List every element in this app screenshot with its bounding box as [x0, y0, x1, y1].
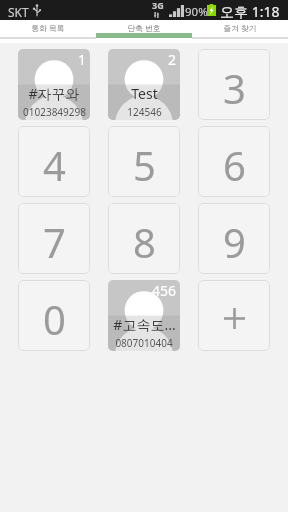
staticText: 01023849298: [23, 105, 86, 119]
button[interactable]: 단축 번호: [96, 20, 192, 43]
button[interactable]: [198, 280, 270, 351]
staticText: 1: [78, 50, 87, 69]
staticText: 90%: [185, 4, 208, 20]
button[interactable]: 8: [108, 203, 180, 274]
staticText: 5: [133, 138, 156, 192]
button[interactable]: 즐겨 찾기: [192, 20, 288, 43]
staticText: 4: [43, 138, 66, 192]
staticText: SKT: [8, 4, 29, 20]
staticText: 3G: [152, 0, 164, 11]
button[interactable]: 4: [18, 126, 90, 197]
staticText: 0: [43, 292, 66, 346]
button[interactable]: 456: [108, 280, 180, 351]
button[interactable]: 3: [198, 49, 270, 120]
button[interactable]: 5: [108, 126, 180, 197]
staticText: #자꾸와: [28, 84, 80, 103]
button[interactable]: 9: [198, 203, 270, 274]
staticText: 오후 1:18: [220, 2, 280, 21]
staticText: 7: [43, 215, 66, 269]
button[interactable]: 통화 목록: [0, 20, 96, 43]
button[interactable]: 6: [198, 126, 270, 197]
staticText: 2: [168, 50, 177, 69]
staticText: #고속도...: [113, 315, 176, 334]
button[interactable]: 7: [18, 203, 90, 274]
staticText: Test: [131, 84, 158, 103]
staticText: 124546: [127, 105, 162, 119]
staticText: 단축 번호: [127, 23, 161, 34]
staticText: 456: [152, 281, 177, 300]
staticText: 8: [133, 215, 156, 269]
staticText: 통화 목록: [31, 23, 65, 34]
button[interactable]: 1: [18, 49, 90, 120]
button[interactable]: 2: [108, 49, 180, 120]
staticText: 3: [223, 61, 246, 115]
staticText: 0807010404: [115, 336, 173, 350]
staticText: 즐겨 찾기: [223, 23, 257, 34]
staticText: 9: [223, 215, 246, 269]
button[interactable]: 0: [18, 280, 90, 351]
staticText: 6: [223, 138, 246, 192]
